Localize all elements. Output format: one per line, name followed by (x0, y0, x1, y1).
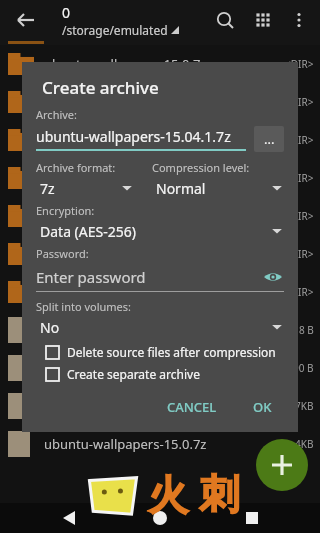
button[interactable]: Grid view (244, 1, 282, 39)
staticText: ubuntu-wallpapers-15.0.7z (44, 245, 207, 263)
staticText: Split into volumes: (36, 299, 132, 314)
staticText: 90 B (293, 361, 314, 375)
button[interactable]: Back (46, 503, 92, 533)
button[interactable]: ubuntu-wallpapers-15.0.7z (0, 121, 320, 159)
staticText: <DIR> (285, 285, 314, 299)
staticText: Create separate archive (67, 366, 200, 382)
staticText: ... (264, 130, 275, 148)
button[interactable]: Add (256, 439, 308, 491)
staticText: Create archive (42, 76, 159, 99)
staticText: Password: (36, 246, 89, 261)
staticText: ubuntu-wallpapers-15.0.7z (44, 169, 207, 187)
staticText: 火 (148, 466, 199, 521)
staticText: OK (253, 398, 272, 416)
staticText: CANCEL (167, 398, 217, 416)
staticText: Archive format: (36, 160, 116, 175)
button[interactable]: More options (282, 3, 316, 37)
button[interactable]: Delete source files after compression (36, 344, 284, 360)
staticText: <DIR> (285, 209, 314, 223)
staticText: ubuntu-wallpapers-15.0.7z (44, 283, 207, 301)
staticText: Archive: (36, 107, 78, 122)
staticText: Normal (156, 179, 270, 198)
staticText: /storage/emulated (62, 22, 168, 38)
staticText: ubuntu-wallpapers-15.0.7z (44, 131, 207, 149)
staticText: ubuntu-wallpapers-15.0.7z (44, 207, 207, 225)
staticText: <DIR> (285, 171, 314, 185)
button[interactable]: ubuntu-wallpapers-15.0.7z (0, 425, 320, 463)
staticText: <DIR> (285, 95, 314, 109)
staticText: 8 B (299, 323, 314, 337)
button[interactable]: Search (206, 1, 244, 39)
staticText: ubuntu-wallpapers-15.0.7z (44, 359, 207, 377)
staticText: Data (AES-256) (40, 222, 270, 241)
button[interactable]: ubuntu-wallpapers-15.0.7z (0, 235, 320, 273)
staticText: No (40, 318, 270, 337)
button[interactable]: ubuntu-wallpapers-15.0.7z (0, 311, 320, 349)
staticText: Enter password (36, 267, 262, 287)
button[interactable]: ubuntu-wallpapers-15.0.7z (0, 387, 320, 425)
button[interactable]: 7z (36, 177, 134, 199)
button[interactable]: Data (AES-256) (36, 220, 284, 242)
button[interactable]: No (36, 316, 284, 338)
button[interactable]: Home (137, 503, 183, 533)
staticText: Delete source files after compression (67, 344, 276, 360)
staticText: Encryption: (36, 203, 95, 218)
staticText: ubuntu-wallpapers-15.0.7z (44, 55, 207, 73)
staticText: 4KB (295, 437, 314, 451)
staticText: ubuntu-wallpapers-15.0.7z (44, 435, 207, 453)
button[interactable]: CANCEL (157, 392, 227, 422)
button[interactable]: ubuntu-wallpapers-15.0.7z (0, 83, 320, 121)
button[interactable]: Browse (254, 126, 284, 152)
staticText: Compression level: (152, 160, 250, 175)
button[interactable]: ubuntu-wallpapers-15.0.7z (0, 349, 320, 387)
button[interactable]: Normal (152, 177, 284, 199)
staticText: <DIR> (285, 247, 314, 261)
staticText: ubuntu-wallpapers-15.0.7z (44, 397, 207, 415)
staticText: 7KB (295, 399, 314, 413)
staticText: ubuntu-wallpapers-15.0.7z (44, 93, 207, 111)
staticText: 0 (62, 3, 71, 22)
button[interactable]: Create separate archive (36, 366, 284, 382)
button[interactable]: ubuntu-wallpapers-15.0.7z (0, 197, 320, 235)
staticText: 7z (40, 179, 120, 198)
staticText: <DIR> (285, 57, 314, 71)
staticText: <DIR> (285, 133, 314, 147)
button[interactable]: Back (6, 0, 46, 40)
button[interactable]: ubuntu-wallpapers-15.0.7z (0, 45, 320, 83)
button[interactable]: Recents (229, 503, 275, 533)
button[interactable]: Show password (262, 266, 284, 288)
button[interactable]: ubuntu-wallpapers-15.0.7z (0, 159, 320, 197)
staticText: ubuntu-wallpapers-15.04.1.7z (36, 127, 231, 146)
button[interactable]: OK (241, 392, 284, 422)
staticText: ubuntu-wallpapers-15.0.7z (44, 321, 207, 339)
button[interactable]: ubuntu-wallpapers-15.0.7z (0, 273, 320, 311)
staticText: 刺 (199, 469, 239, 519)
button[interactable]: Enter password (36, 266, 284, 288)
